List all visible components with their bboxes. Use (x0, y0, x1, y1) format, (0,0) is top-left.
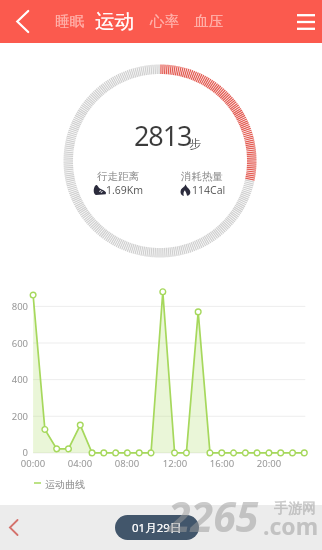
staticText: 200 (1, 410, 28, 423)
staticText: 1.69Km (106, 183, 144, 197)
staticText: 20:00 (252, 457, 286, 470)
button[interactable]: 血压 (188, 7, 229, 35)
staticText: 手游网 (274, 500, 316, 518)
staticText: 12:00 (158, 457, 192, 470)
button[interactable]: 心率 (144, 7, 185, 35)
staticText: 2813 (134, 117, 192, 154)
staticText: 800 (1, 300, 28, 313)
staticText: 04:00 (63, 457, 97, 470)
staticText: 114Cal (192, 183, 226, 197)
staticText: 心率 (150, 12, 179, 30)
staticText: 600 (1, 337, 28, 350)
button[interactable]: Menu (288, 0, 322, 43)
staticText: 消耗热量 (181, 170, 223, 183)
staticText: 步 (189, 136, 201, 151)
button[interactable]: 运动 (89, 4, 140, 39)
staticText: 2265 (168, 488, 259, 544)
button[interactable]: 01月29日 (115, 515, 199, 540)
button[interactable]: 睡眠 (49, 7, 90, 35)
staticText: 睡眠 (55, 12, 84, 30)
button[interactable]: Back (0, 0, 44, 43)
staticText: 血压 (194, 12, 223, 30)
staticText: .com (263, 510, 319, 541)
staticText: 运动 (95, 9, 134, 34)
staticText: 行走距离 (97, 170, 139, 183)
staticText: 01月29日 (132, 520, 182, 536)
staticText: 运动曲线 (45, 478, 85, 491)
staticText: 400 (1, 373, 28, 386)
button[interactable]: Previous day (0, 505, 30, 550)
staticText: 00:00 (16, 457, 50, 470)
staticText: 16:00 (205, 457, 239, 470)
staticText: 0 (1, 446, 28, 459)
staticText: 08:00 (110, 457, 144, 470)
